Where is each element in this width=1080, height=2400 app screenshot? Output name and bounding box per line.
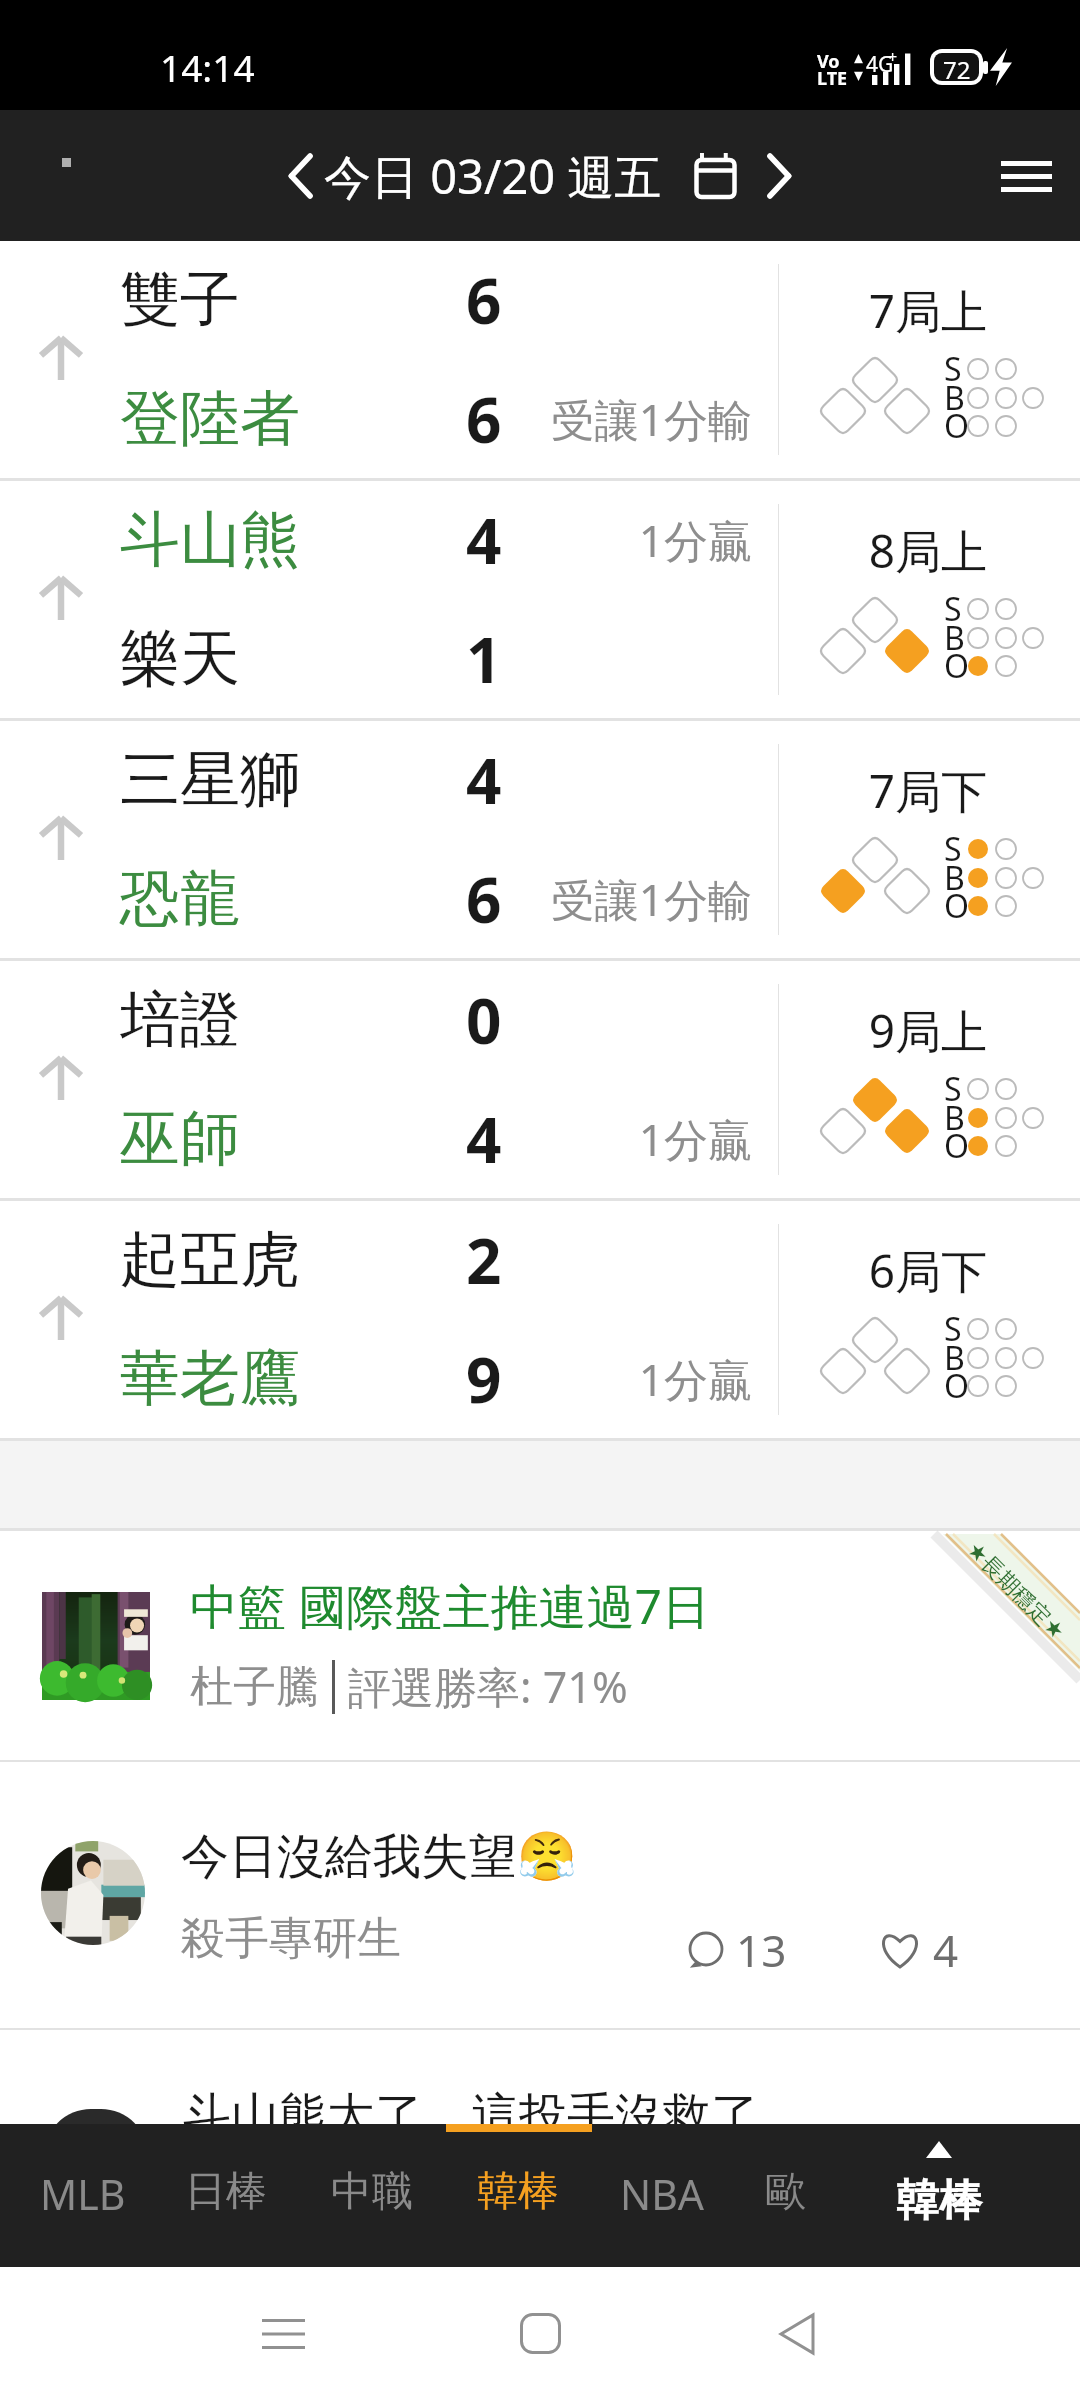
staticText: S (944, 347, 962, 391)
button[interactable]: 今日 03/20 週五 (289, 144, 791, 208)
staticText: S (944, 1307, 962, 1351)
button[interactable]: 日棒 (167, 2150, 285, 2234)
staticText: 6 (466, 377, 502, 461)
staticText: 殺手專研生 (181, 1911, 401, 1966)
staticText: B (944, 1096, 965, 1140)
staticText: 三星獅 (120, 742, 300, 818)
button[interactable]: 韓棒 (459, 2150, 577, 2234)
staticText: S (944, 1067, 962, 1111)
staticText: NBA (620, 2166, 705, 2222)
button[interactable]: 培證 (0, 961, 1080, 1198)
staticText: 2 (466, 1218, 502, 1302)
staticText: ★長期穩定★ (961, 1536, 1071, 1646)
staticText: 中職 (331, 2166, 413, 2218)
button[interactable]: 斗山熊 (0, 481, 1080, 718)
staticText: LTE (817, 66, 848, 91)
staticText: 6 (466, 258, 502, 342)
staticText: 起亞虎 (120, 1222, 300, 1298)
staticText: 9局上 (808, 999, 1048, 1062)
staticText: 斗山熊太了，這投手沒救了 (183, 2086, 759, 2146)
staticText: 華老鷹 (120, 1341, 300, 1417)
button[interactable]: 三星獅 (0, 721, 1080, 958)
staticText: 1 (466, 617, 502, 701)
staticText: Vo (817, 49, 840, 74)
staticText: 13 (736, 1920, 787, 1980)
staticText: S (944, 587, 962, 631)
staticText: 中籃 國際盤主推連過7日 (190, 1573, 710, 1639)
staticText: 1分贏 (400, 1349, 752, 1409)
staticText: 4 (466, 738, 502, 822)
staticText: + (888, 46, 898, 68)
staticText: 1分贏 (400, 1109, 752, 1169)
staticText: 72 (943, 53, 971, 81)
button[interactable]: 中籃 國際盤主推連過7日 (0, 1531, 1080, 1760)
staticText: B (944, 856, 965, 900)
staticText: 培證 (120, 982, 240, 1058)
staticText: 韓棒 (896, 2174, 982, 2228)
staticText: 8局上 (808, 519, 1048, 582)
staticText: O (944, 644, 969, 688)
button[interactable]: Home (450, 2267, 630, 2400)
staticText: 評選勝率: 71% (348, 1657, 628, 1716)
staticText: 0 (466, 978, 502, 1062)
staticText: 7局下 (808, 759, 1048, 822)
staticText: 斗山熊 (120, 502, 300, 578)
button[interactable]: MLB (22, 2150, 144, 2238)
staticText: B (944, 1336, 965, 1380)
staticText: 恐龍 (120, 861, 240, 937)
staticText: S (944, 827, 962, 871)
staticText: O (944, 404, 969, 448)
staticText: 14:14 (160, 42, 255, 92)
staticText: 雙子 (120, 262, 240, 338)
staticText: 7局上 (808, 279, 1048, 342)
staticText: 杜子騰 (190, 1660, 319, 1714)
button[interactable]: 今日沒給我失望😤 (0, 1762, 1080, 2028)
staticText: B (944, 616, 965, 660)
staticText: 歐 (765, 2166, 806, 2218)
staticText: O (944, 884, 969, 928)
staticText: 登陸者 (120, 381, 300, 457)
staticText: 1分贏 (400, 510, 752, 570)
button[interactable]: 起亞虎 (0, 1201, 1080, 1438)
staticText: 6 (466, 857, 502, 941)
staticText: 4 (466, 498, 502, 582)
staticText: 樂天 (120, 621, 240, 697)
staticText: 韓棒 (477, 2166, 559, 2218)
staticText: 4 (466, 1097, 502, 1181)
staticText: 4G (866, 50, 894, 79)
staticText: MLB (40, 2166, 126, 2222)
staticText: 受讓1分輸 (400, 389, 752, 449)
button[interactable]: Menu (976, 126, 1076, 226)
button[interactable]: 歐 (747, 2150, 824, 2234)
staticText: 受讓1分輸 (400, 869, 752, 929)
staticText: 今日沒給我失望😤 (181, 1827, 577, 1887)
staticText: 今日 03/20 週五 (324, 144, 662, 208)
button[interactable]: NBA (602, 2150, 723, 2238)
button[interactable]: 中職 (313, 2150, 431, 2234)
staticText: 日棒 (185, 2166, 267, 2218)
staticText: 9 (466, 1337, 502, 1421)
button[interactable]: Recents (193, 2267, 373, 2400)
staticText: O (944, 1364, 969, 1408)
staticText: B (944, 376, 965, 420)
staticText: O (944, 1124, 969, 1168)
staticText: 巫師 (120, 1101, 240, 1177)
button[interactable]: 雙子 (0, 241, 1080, 478)
button[interactable]: 韓棒 (846, 2124, 1031, 2267)
staticText: 4 (933, 1920, 959, 1980)
staticText: 6局下 (808, 1239, 1048, 1302)
button[interactable]: Back (707, 2267, 887, 2400)
